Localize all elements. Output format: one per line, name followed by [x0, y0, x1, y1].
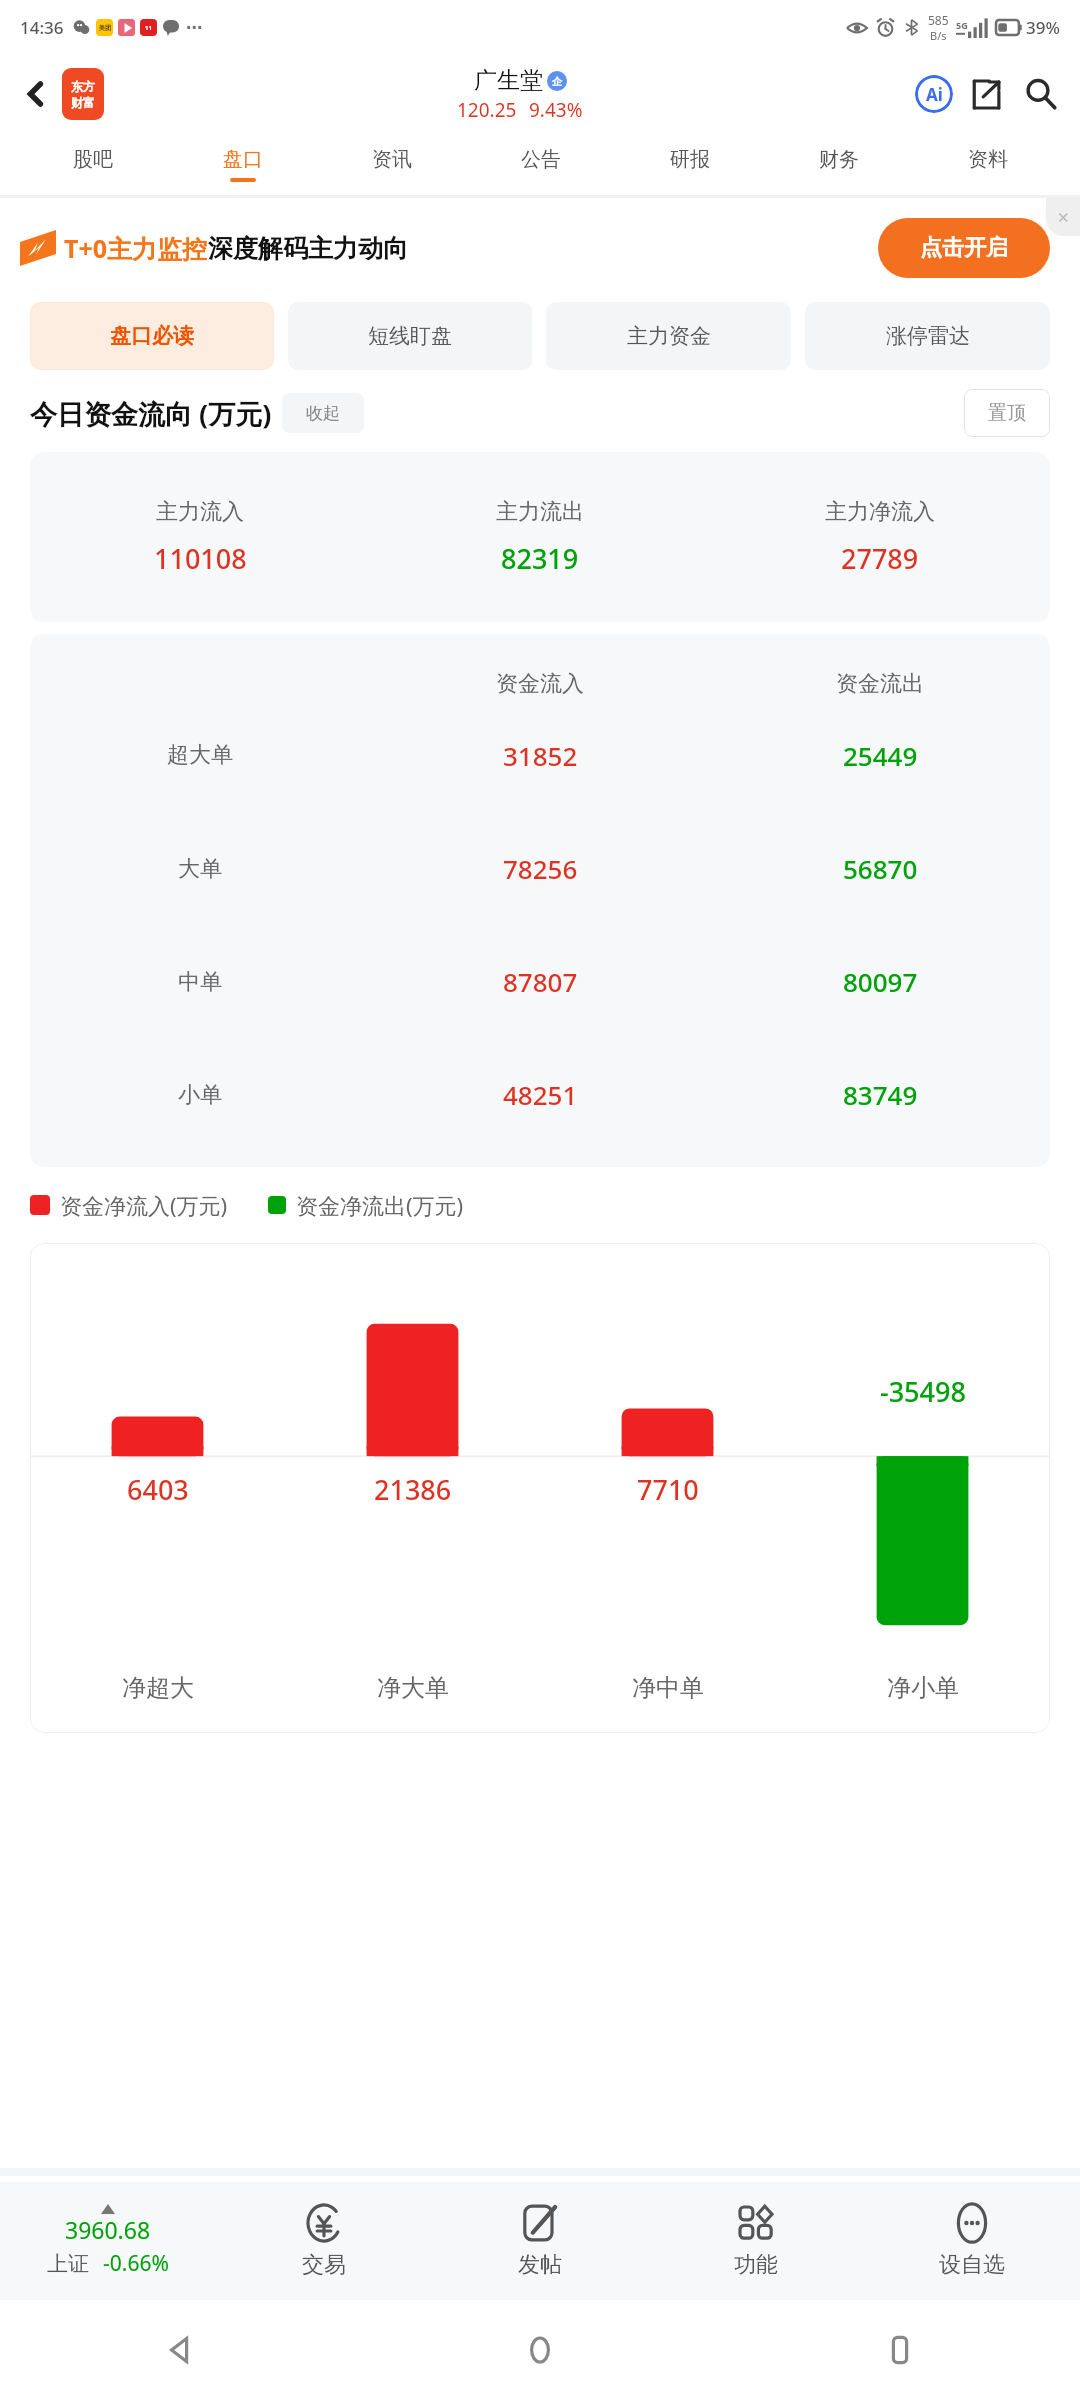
staticText: 31852: [503, 738, 578, 773]
button[interactable]: Share: [960, 68, 1012, 120]
staticText: 39%: [1026, 16, 1060, 39]
staticText: 主力流出: [496, 498, 584, 526]
staticText: 中单: [178, 968, 222, 996]
button[interactable]: Back: [14, 72, 58, 116]
button[interactable]: Recents: [720, 2300, 1080, 2400]
staticText: 美团: [99, 24, 111, 32]
staticText: 交易: [302, 2251, 346, 2279]
staticText: 11: [145, 24, 152, 32]
staticText: 净中单: [632, 1673, 704, 1703]
staticText: 3960.68: [65, 2214, 151, 2245]
staticText: 短线盯盘: [368, 323, 452, 349]
staticText: 资料: [968, 147, 1008, 172]
button[interactable]: 主力资金: [546, 302, 791, 370]
staticText: 今日资金流向 (万元): [30, 395, 272, 432]
staticText: 功能: [734, 2251, 778, 2279]
staticText: 25449: [843, 738, 918, 773]
staticText: 大单: [178, 855, 222, 883]
staticText: 企: [552, 75, 562, 88]
staticText: 585: [928, 12, 949, 28]
button[interactable]: Back: [0, 2300, 360, 2400]
staticText: 87807: [503, 964, 578, 999]
staticText: 收起: [306, 403, 340, 424]
button[interactable]: Trade: [216, 2182, 432, 2300]
button[interactable]: 主力流入: [30, 452, 1050, 622]
button[interactable]: Functions: [648, 2182, 864, 2300]
staticText: 小单: [178, 1081, 222, 1109]
button[interactable]: 点击开启: [878, 218, 1050, 278]
staticText: 14:36: [20, 16, 64, 39]
button[interactable]: Post: [432, 2182, 648, 2300]
staticText: 27789: [841, 540, 919, 577]
button[interactable]: 盘口必读: [30, 302, 274, 370]
staticText: ⋯: [186, 18, 202, 37]
button[interactable]: 3960.68: [0, 2182, 216, 2300]
staticText: 财富: [71, 95, 95, 110]
button[interactable]: 盘口: [168, 133, 317, 195]
staticText: 点击开启: [920, 234, 1008, 262]
staticText: 110108: [154, 540, 247, 577]
staticText: 财务: [819, 147, 859, 172]
staticText: 资金净流出(万元): [296, 1190, 464, 1220]
staticText: 净超大: [122, 1673, 194, 1703]
staticText: B/s: [930, 28, 947, 43]
staticText: 5G: [956, 19, 968, 31]
staticText: ✕: [1057, 209, 1070, 226]
staticText: -35498: [880, 1373, 966, 1410]
staticText: 80097: [843, 964, 918, 999]
button[interactable]: 财务: [764, 133, 913, 195]
staticText: -0.66%: [103, 2249, 169, 2278]
button[interactable]: Add to watchlist: [864, 2182, 1080, 2300]
staticText: 发帖: [518, 2251, 562, 2279]
button[interactable]: 资料: [913, 133, 1062, 195]
button[interactable]: Home: [360, 2300, 720, 2400]
staticText: 超大单: [167, 741, 233, 769]
staticText: 主力资金: [627, 323, 711, 349]
staticText: 资金流入: [496, 670, 584, 698]
staticText: 56870: [843, 851, 918, 886]
staticText: 股吧: [73, 147, 113, 172]
staticText: 主力流入: [156, 498, 244, 526]
staticText: 净小单: [887, 1673, 959, 1703]
button[interactable]: 研报: [615, 133, 764, 195]
staticText: 资金净流入(万元): [60, 1190, 228, 1220]
staticText: 主力净流入: [825, 498, 935, 526]
staticText: Ai: [926, 83, 943, 106]
button[interactable]: 资讯: [317, 133, 466, 195]
staticText: 置顶: [988, 401, 1026, 425]
button[interactable]: 公告: [466, 133, 615, 195]
staticText: 120.25: [457, 97, 517, 123]
staticText: 83749: [843, 1077, 918, 1112]
staticText: 21386: [374, 1471, 452, 1508]
staticText: 东方: [71, 79, 95, 94]
button[interactable]: East Money: [62, 68, 104, 120]
staticText: 深度解码主力动向: [208, 233, 408, 264]
button[interactable]: 股吧: [18, 133, 168, 195]
staticText: 研报: [670, 147, 710, 172]
button[interactable]: Search: [1012, 65, 1070, 123]
staticText: T+0主力监控: [64, 231, 208, 265]
button[interactable]: Close ad: [1046, 198, 1080, 236]
button[interactable]: 短线盯盘: [288, 302, 532, 370]
staticText: 资讯: [372, 147, 412, 172]
button[interactable]: 6403: [30, 1243, 1050, 1733]
button[interactable]: 置顶: [964, 389, 1050, 437]
button[interactable]: 涨停雷达: [805, 302, 1050, 370]
button[interactable]: 资金流入: [30, 634, 1050, 1167]
staticText: 上证: [47, 2251, 89, 2277]
staticText: 净大单: [377, 1673, 449, 1703]
staticText: 7710: [637, 1471, 699, 1508]
staticText: 78256: [503, 851, 578, 886]
staticText: 盘口: [223, 147, 263, 172]
staticText: 6403: [127, 1471, 189, 1508]
staticText: 48251: [503, 1077, 578, 1112]
staticText: 资金流出: [836, 670, 924, 698]
button[interactable]: AI assistant: [908, 68, 960, 120]
staticText: 设自选: [939, 2251, 1005, 2279]
staticText: 公告: [521, 147, 561, 172]
button[interactable]: 收起: [282, 393, 364, 433]
staticText: 涨停雷达: [886, 323, 970, 349]
staticText: 9.43%: [529, 97, 583, 123]
staticText: 盘口必读: [110, 323, 194, 349]
staticText: 广生堂: [474, 66, 543, 95]
